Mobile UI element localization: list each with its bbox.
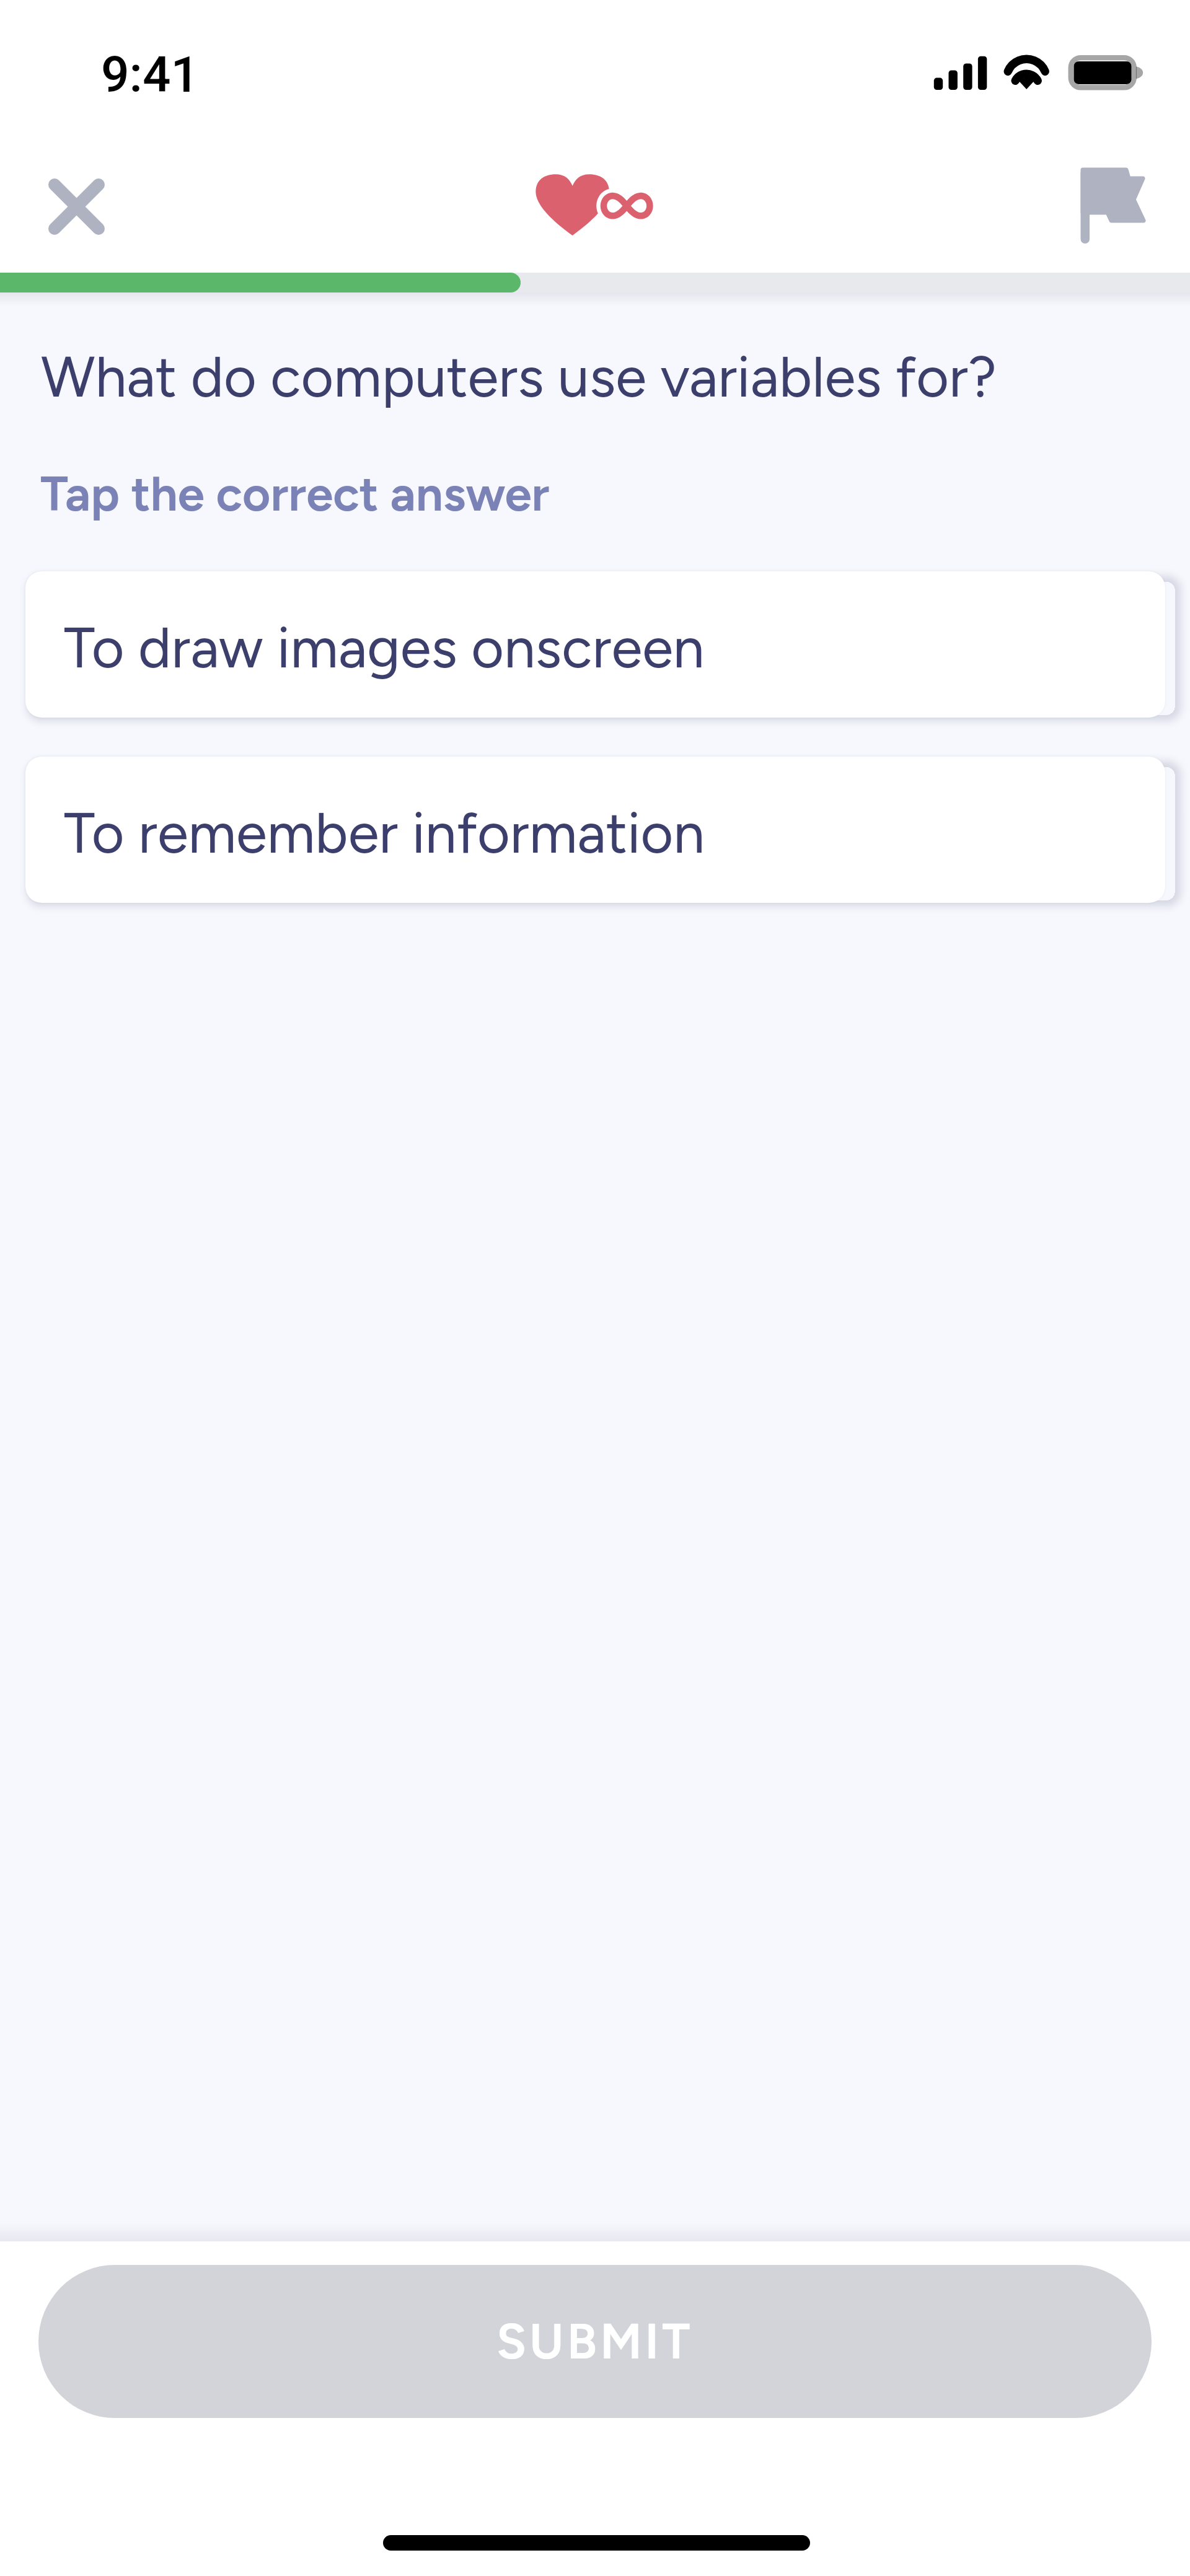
staticText: Tap the correct answer xyxy=(40,465,550,523)
button[interactable]: To remember information xyxy=(25,757,1165,903)
staticText: To remember information xyxy=(64,799,705,867)
button[interactable]: Unlimited hearts xyxy=(531,170,661,242)
staticText: 9:41 xyxy=(101,46,200,104)
button[interactable]: SUBMIT xyxy=(38,2265,1152,2418)
staticText: What do computers use variables for? xyxy=(41,343,1150,411)
button[interactable]: Report xyxy=(1072,160,1159,259)
button[interactable]: Close xyxy=(27,157,126,257)
button[interactable]: To draw images onscreen xyxy=(25,571,1165,718)
staticText: SUBMIT xyxy=(496,2312,694,2371)
staticText: To draw images onscreen xyxy=(64,614,705,682)
